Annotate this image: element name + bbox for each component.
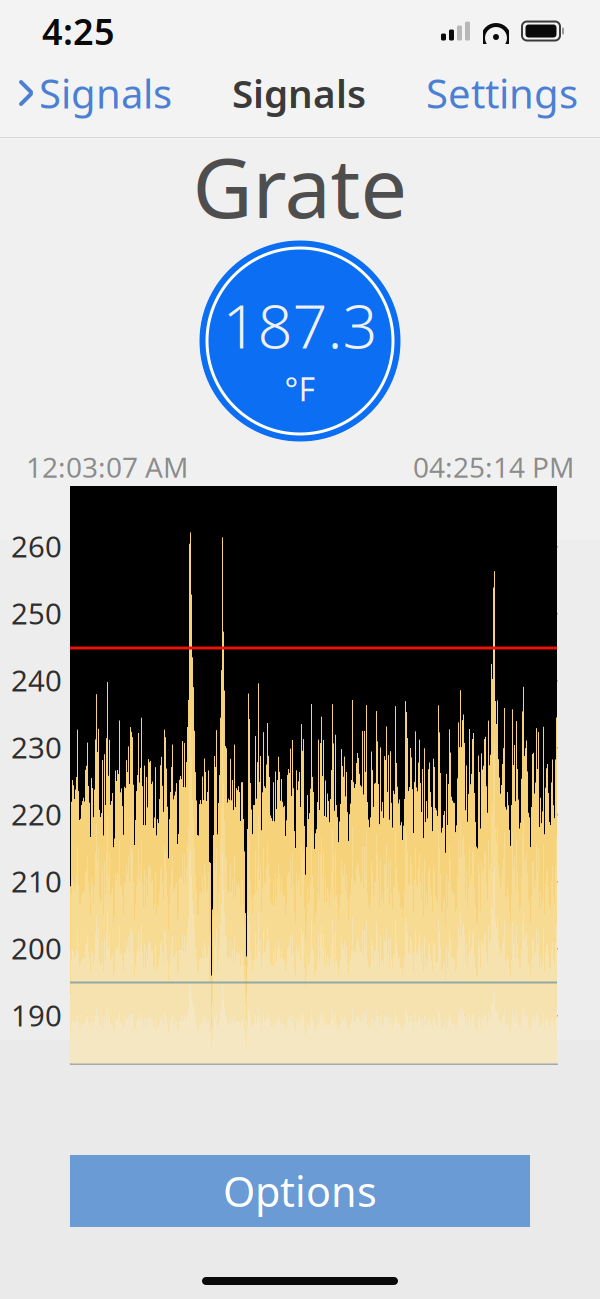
button[interactable]: Options [70, 1155, 530, 1227]
staticText: 260 [11, 526, 62, 565]
staticText: 4:25 [42, 7, 115, 55]
staticText: 220 [11, 794, 62, 833]
staticText: Settings [426, 66, 578, 119]
staticText: 230 [11, 727, 62, 766]
staticText: Signals [232, 67, 366, 119]
staticText: 12:03:07 AM [26, 448, 188, 486]
staticText: Signals [39, 66, 172, 119]
staticText: Options [223, 1164, 377, 1218]
staticText: Grate [192, 131, 407, 241]
staticText: 200 [11, 928, 62, 967]
button[interactable]: Settings [426, 58, 600, 127]
staticText: 04:25:14 PM [413, 448, 574, 486]
staticText: 250 [11, 593, 62, 632]
staticText: °F [284, 367, 315, 410]
staticText: 210 [11, 861, 62, 900]
staticText: 190 [11, 995, 62, 1034]
button[interactable]: Signals [0, 58, 172, 127]
staticText: 187.3 [222, 284, 377, 365]
staticText: 240 [11, 660, 62, 699]
